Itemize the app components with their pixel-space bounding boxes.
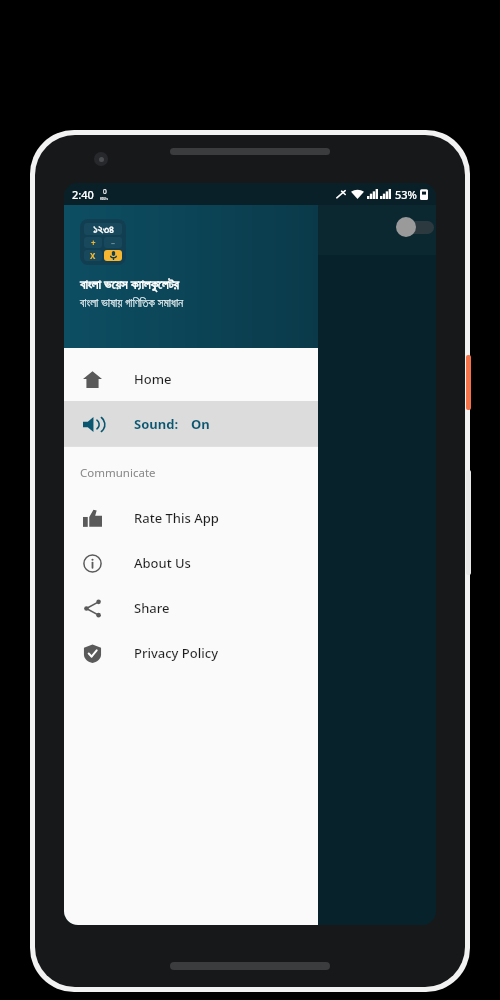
staticText: About Us [134,554,191,572]
staticText: KB/s [100,196,109,201]
staticText: 0 [103,187,107,196]
button[interactable]: Share [64,585,318,630]
staticText: Share [134,599,170,617]
staticText: Sound: [134,415,179,433]
button[interactable]: Home [64,356,318,401]
staticText: Communicate [80,465,156,481]
staticText: + [91,237,96,248]
staticText: বাংলা ভাষায় গাণিতিক সমাধান [80,295,184,311]
staticText: X [90,250,96,261]
button[interactable]: About Us [64,540,318,585]
staticText: Rate This App [134,509,219,527]
button[interactable]: Privacy Policy [64,630,318,675]
staticText: 53% [395,187,417,202]
staticText: ১২৩৪ [93,224,114,235]
staticText: – [111,237,115,248]
staticText: Privacy Policy [134,644,218,662]
button[interactable]: Rate This App [64,495,318,540]
staticText: 2:40 [72,187,94,202]
button[interactable]: Sound: [64,401,318,446]
staticText: On [191,415,210,433]
staticText: Home [134,370,172,388]
staticText: বাংলা ভয়েস ক্যালকুলেটর [80,275,179,293]
